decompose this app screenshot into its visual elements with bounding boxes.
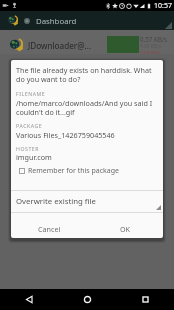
- button[interactable]: OK: [87, 213, 163, 238]
- staticText: 10:57: [154, 1, 172, 11]
- button[interactable]: Remember for this package: [16, 166, 158, 176]
- button[interactable]: Recent apps: [116, 289, 174, 310]
- staticText: JDownloader@...: [28, 40, 92, 51]
- staticText: /home/marco/downloads/And you said I cou…: [16, 98, 158, 117]
- staticText: OK: [120, 224, 131, 234]
- staticText: 0.57 KB/s: [140, 35, 168, 43]
- staticText: FILENAME: [16, 90, 46, 97]
- button[interactable]: Back: [0, 289, 58, 310]
- staticText: Overwrite existing file: [16, 196, 96, 207]
- button[interactable]: Cancel: [11, 213, 87, 238]
- staticText: Cancel: [38, 224, 61, 234]
- staticText: Dashboard: [36, 16, 77, 27]
- staticText: HOSTER: [16, 145, 40, 152]
- staticText: imgur.com: [16, 152, 52, 162]
- staticText: The file already exists on harddisk. Wha…: [16, 65, 152, 84]
- button[interactable]: Overwrite existing file: [11, 191, 163, 212]
- staticText: 4.43 KB/s: [140, 43, 161, 50]
- button[interactable]: Home: [58, 289, 116, 310]
- staticText: 0.58 KB/s: [140, 50, 161, 57]
- staticText: PACKAGE: [16, 122, 43, 129]
- staticText: Remember for this package: [28, 166, 119, 176]
- staticText: Various Files_1426759045546: [16, 130, 115, 140]
